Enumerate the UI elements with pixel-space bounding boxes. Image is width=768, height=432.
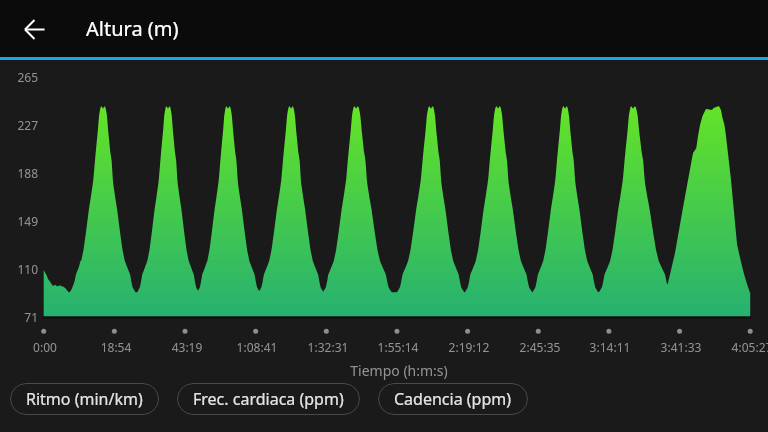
staticText: 2:45:35 <box>500 339 580 355</box>
staticText: Cadencia (ppm) <box>394 388 512 410</box>
staticText: 0:00 <box>5 339 85 355</box>
staticText: 149 <box>0 213 38 229</box>
staticText: 2:19:12 <box>429 339 509 355</box>
button[interactable]: Cadencia (ppm) <box>378 383 528 415</box>
staticText: 18:54 <box>76 339 156 355</box>
staticText: 265 <box>0 69 38 85</box>
staticText: 1:55:14 <box>358 339 438 355</box>
staticText: Altura (m) <box>86 15 179 42</box>
staticText: 43:19 <box>147 339 227 355</box>
staticText: Tiempo (h:m:s) <box>329 361 469 380</box>
button[interactable]: Back <box>12 7 56 51</box>
staticText: Ritmo (min/km) <box>26 388 143 410</box>
button[interactable]: Ritmo (min/km) <box>10 383 159 415</box>
staticText: 3:41:33 <box>641 339 721 355</box>
staticText: 1:32:31 <box>288 339 368 355</box>
staticText: 3:14:11 <box>570 339 650 355</box>
staticText: 110 <box>0 261 38 277</box>
staticText: 71 <box>0 309 38 325</box>
staticText: 227 <box>0 117 38 133</box>
staticText: 188 <box>0 165 38 181</box>
button[interactable]: Frec. cardiaca (ppm) <box>177 383 360 415</box>
staticText: Frec. cardiaca (ppm) <box>193 388 344 410</box>
staticText: 1:08:41 <box>217 339 297 355</box>
staticText: 4:05:27 <box>712 339 768 355</box>
